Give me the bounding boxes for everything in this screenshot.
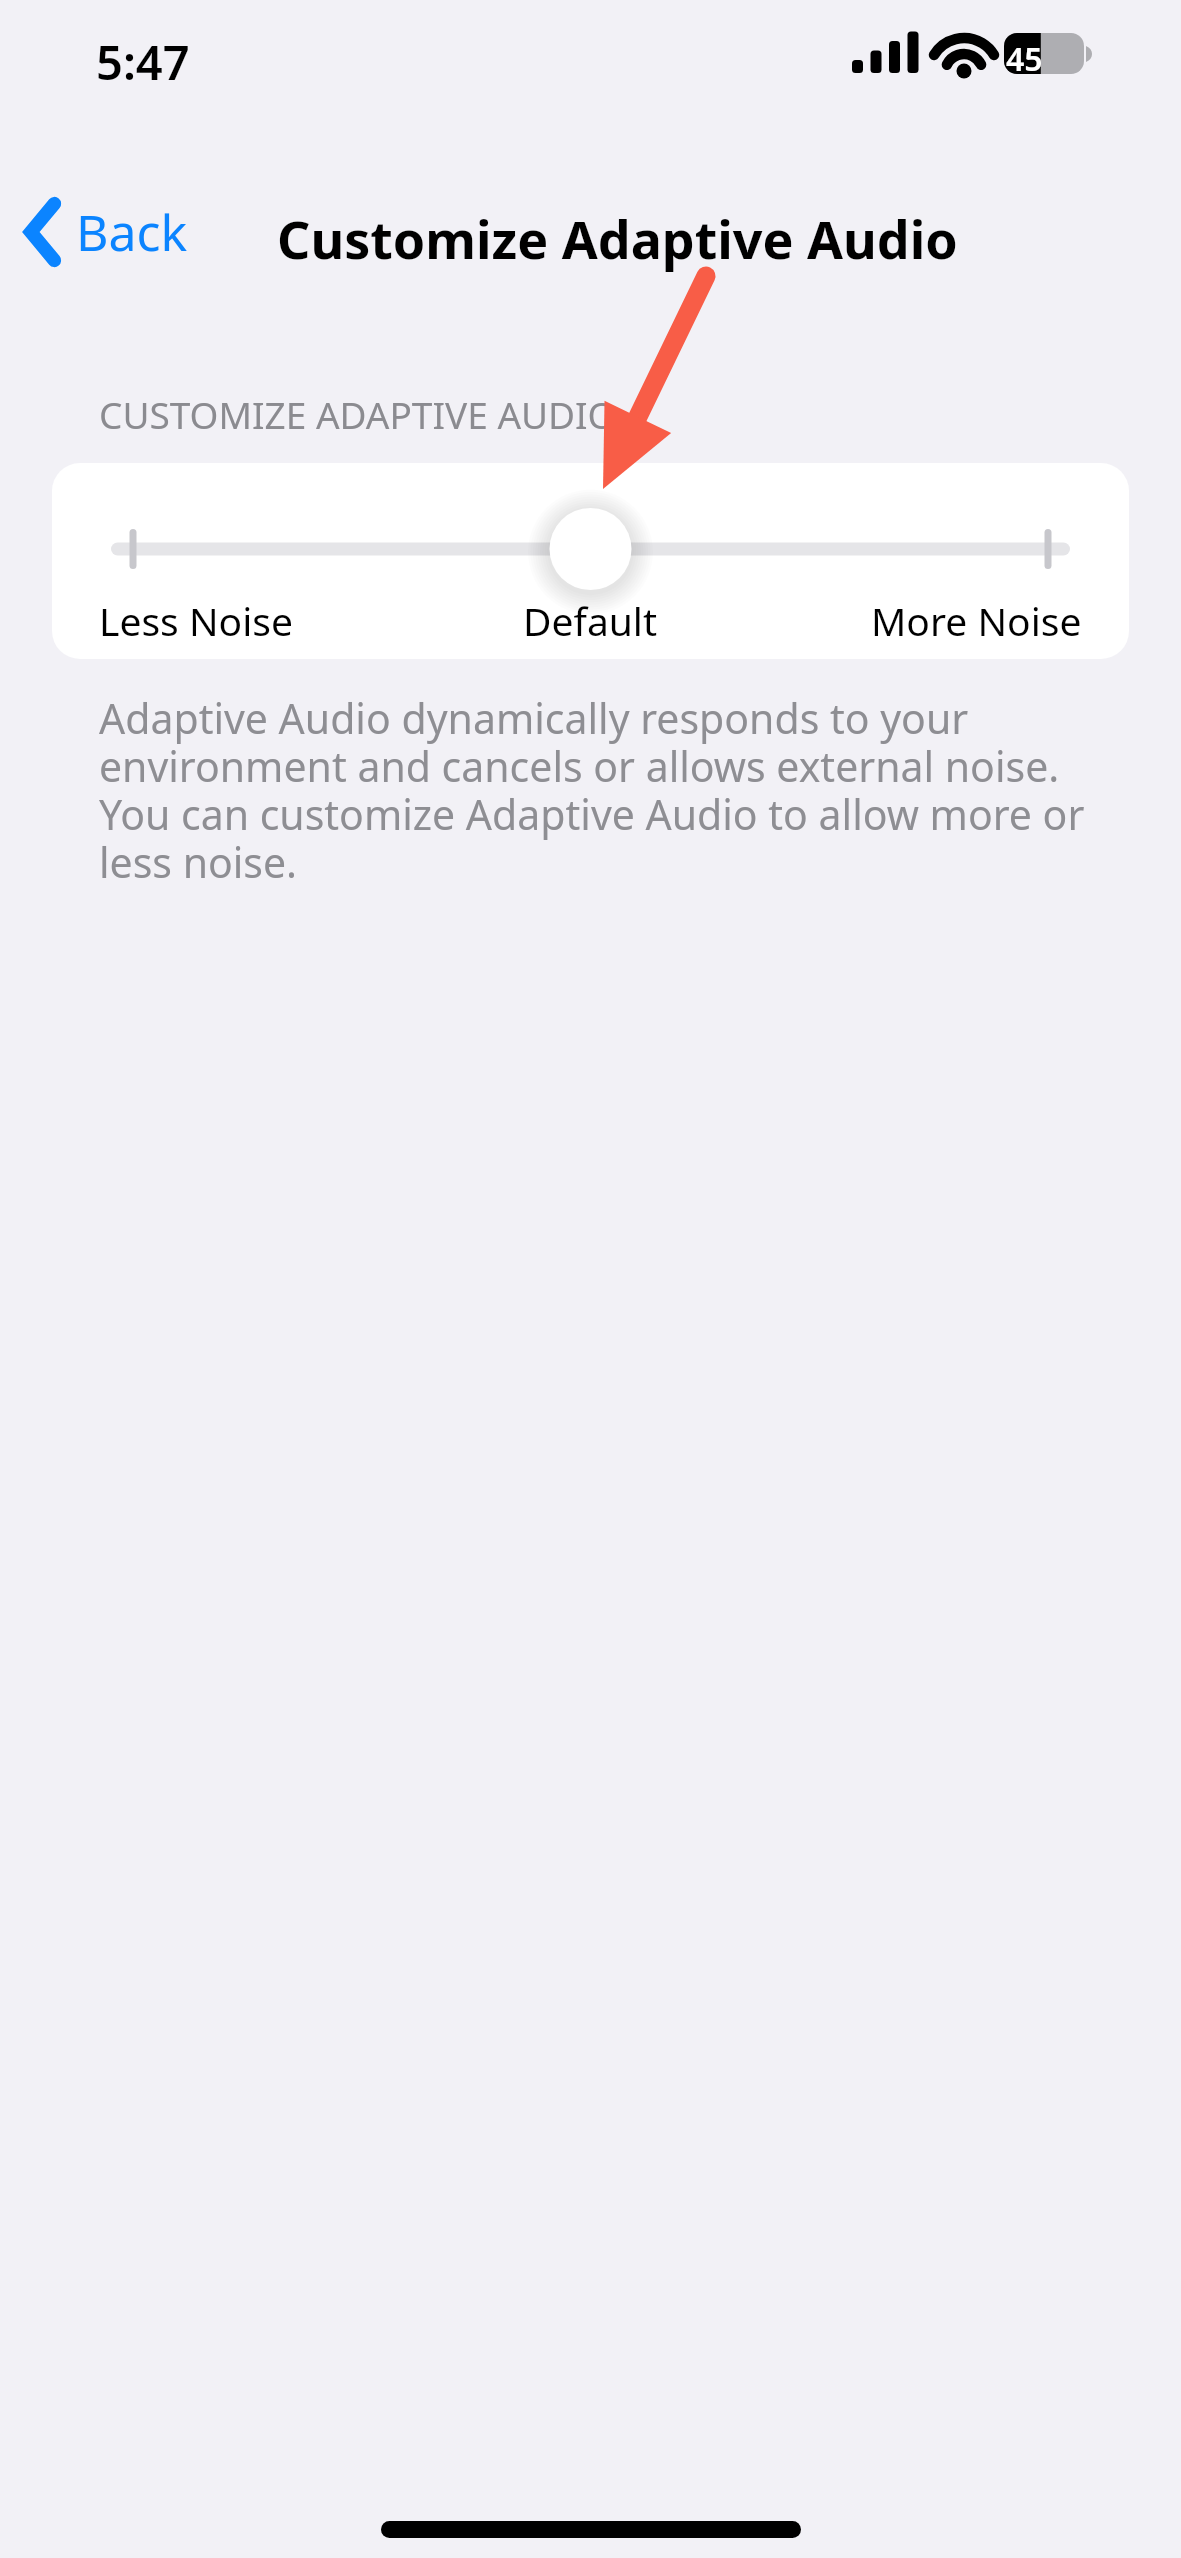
staticText: Default	[523, 594, 658, 647]
staticText: Back	[76, 198, 188, 266]
button[interactable]: Back	[14, 188, 198, 276]
staticText: 45	[1006, 37, 1043, 81]
staticText: More Noise	[871, 594, 1082, 647]
button[interactable]: Adaptive Audio level slider	[52, 463, 1129, 595]
other: Home indicator	[381, 2521, 801, 2538]
staticText: Adaptive Audio dynamically responds to y…	[99, 690, 1104, 890]
staticText: Customize Adaptive Audio	[277, 203, 958, 274]
staticText: Less Noise	[99, 594, 293, 647]
staticText: 5:47	[96, 30, 190, 94]
staticText: CUSTOMIZE ADAPTIVE AUDIO	[99, 389, 617, 439]
